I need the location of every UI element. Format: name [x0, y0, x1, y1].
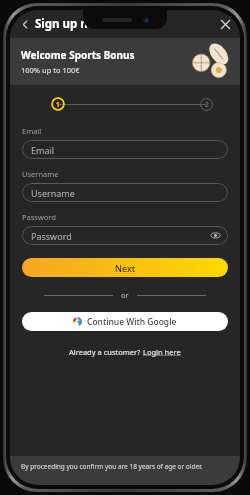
staticText: Email [31, 144, 55, 156]
button[interactable]: Login here [143, 347, 181, 357]
button[interactable]: 1 [51, 97, 65, 111]
staticText: Email [22, 126, 42, 136]
button[interactable]: Welcome Sports Bonus [10, 38, 240, 85]
staticText: Username [22, 169, 59, 179]
button[interactable]: Back [14, 13, 36, 35]
button[interactable]: Username [22, 183, 228, 202]
button[interactable]: Password [22, 226, 228, 245]
staticText: Username [31, 187, 75, 199]
staticText: 1 [56, 100, 60, 109]
staticText: Next [115, 262, 136, 274]
staticText: Continue With Google [87, 316, 177, 328]
button[interactable]: 2 [200, 98, 213, 111]
button[interactable]: Close [214, 13, 236, 35]
button[interactable]: Next [22, 258, 228, 277]
staticText: Welcome Sports Bonus [21, 48, 135, 62]
staticText: Password [22, 212, 56, 222]
button[interactable]: Show password [209, 229, 222, 242]
staticText: By proceeding you confirm you are 18 yea… [21, 462, 203, 471]
staticText: Password [31, 230, 72, 242]
staticText: 100% up to 100€ [21, 65, 80, 75]
staticText: Login here [143, 347, 181, 357]
button[interactable]: Continue With Google [22, 312, 228, 331]
staticText: Already a customer? [69, 347, 143, 357]
staticText: Sign up now [35, 16, 105, 32]
staticText: 2 [205, 100, 209, 109]
button[interactable]: Email [22, 140, 228, 159]
staticText: or [121, 290, 129, 300]
